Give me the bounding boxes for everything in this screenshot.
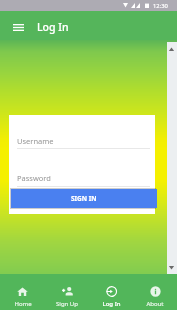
staticText: 12:30 — [153, 2, 168, 10]
staticText: Password — [17, 173, 51, 183]
staticText: Username — [17, 136, 54, 146]
staticText: Log In — [37, 20, 69, 34]
staticText: About — [146, 300, 164, 308]
staticText: Sign Up — [56, 300, 78, 308]
button[interactable]: Open navigation menu — [7, 16, 29, 38]
button[interactable]: SIGN IN — [11, 189, 157, 208]
button[interactable]: Sign Up — [45, 274, 89, 310]
button[interactable]: About — [133, 274, 177, 310]
staticText: SIGN IN — [71, 194, 97, 203]
staticText: Home — [14, 300, 32, 308]
staticText: Log In — [102, 300, 121, 308]
button[interactable]: Log In — [89, 274, 133, 310]
button[interactable]: Home — [0, 274, 45, 310]
